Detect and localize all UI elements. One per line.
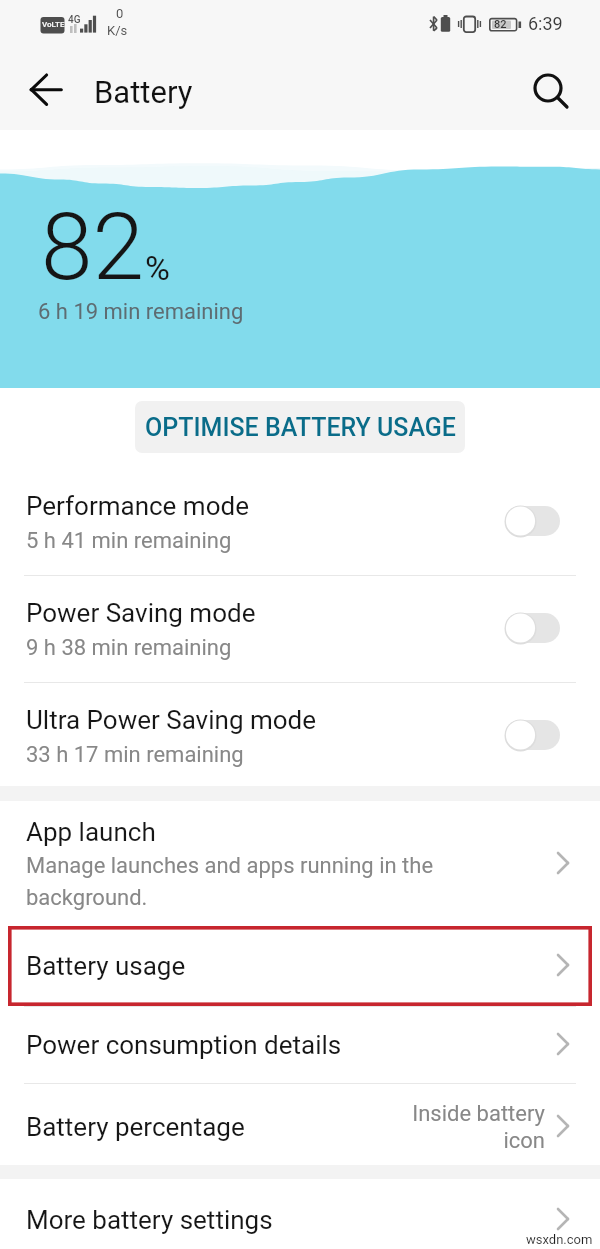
staticText: 6:39 <box>528 13 563 34</box>
button[interactable]: Back <box>14 64 70 120</box>
staticText: More battery settings <box>26 1205 273 1235</box>
staticText: Power Saving mode <box>26 598 256 628</box>
staticText: OPTIMISE BATTERY USAGE <box>145 413 456 442</box>
staticText: 6 h 19 min remaining <box>38 299 244 325</box>
staticText: Manage launches and apps running in the … <box>26 853 434 910</box>
staticText: 82 <box>41 193 145 302</box>
button[interactable]: Power Saving mode <box>0 575 600 682</box>
button[interactable]: Ultra Power Saving mode <box>0 682 600 789</box>
staticText: 4G <box>68 14 81 26</box>
staticText: Battery percentage <box>26 1112 245 1142</box>
staticText: wsxdn.com <box>526 1232 593 1247</box>
staticText: 5 h 41 min remaining <box>26 528 232 554</box>
button[interactable]: App launch <box>0 801 600 926</box>
staticText: Performance mode <box>26 491 249 521</box>
staticText: 0 <box>116 6 124 21</box>
staticText: % <box>145 248 170 288</box>
button[interactable]: Power consumption details <box>0 1006 600 1083</box>
button[interactable]: OPTIMISE BATTERY USAGE <box>135 401 465 453</box>
staticText: App launch <box>26 817 156 847</box>
button[interactable]: Search <box>527 69 575 117</box>
staticText: K/s <box>107 23 128 38</box>
button[interactable]: Battery percentage <box>0 1086 600 1168</box>
button[interactable]: More battery settings <box>0 1179 600 1249</box>
staticText: 82 <box>494 18 507 31</box>
staticText: VoLTE <box>42 20 65 29</box>
staticText: Power consumption details <box>26 1030 342 1060</box>
button[interactable]: Performance mode <box>0 468 600 575</box>
staticText: 33 h 17 min remaining <box>26 742 244 768</box>
button[interactable]: Battery usage <box>0 926 600 1006</box>
staticText: Battery usage <box>26 951 186 981</box>
staticText: Inside battery icon <box>405 1101 545 1154</box>
staticText: Battery <box>94 74 193 110</box>
staticText: Ultra Power Saving mode <box>26 705 317 735</box>
staticText: 9 h 38 min remaining <box>26 635 232 661</box>
